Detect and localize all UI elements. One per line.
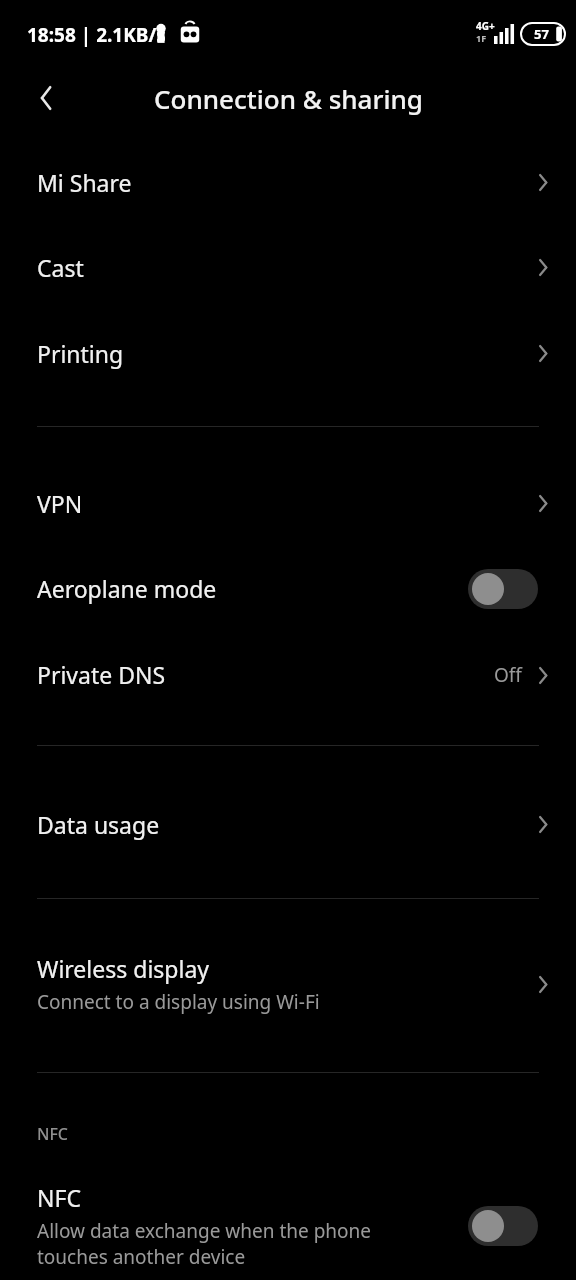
button[interactable]: Back bbox=[20, 71, 74, 125]
staticText: 57 bbox=[534, 25, 549, 43]
staticText: NFC bbox=[37, 1123, 69, 1145]
button[interactable]: Wireless display bbox=[0, 930, 576, 1038]
staticText: VPN bbox=[37, 488, 83, 519]
staticText: 1F bbox=[476, 32, 487, 44]
staticText: Wireless display bbox=[37, 953, 210, 984]
button[interactable]: Printing bbox=[0, 311, 576, 396]
button[interactable]: Cast bbox=[0, 225, 576, 310]
button[interactable]: Data usage bbox=[0, 782, 576, 867]
staticText: Private DNS bbox=[37, 659, 166, 690]
button[interactable]: NFC bbox=[0, 1172, 576, 1280]
staticText: Off bbox=[494, 662, 522, 688]
staticText: Mi Share bbox=[37, 167, 132, 198]
staticText: NFC bbox=[37, 1182, 81, 1213]
staticText: 4G+ bbox=[476, 19, 495, 33]
staticText: Cast bbox=[37, 252, 84, 283]
button[interactable]: VPN bbox=[0, 461, 576, 546]
staticText: 18:58 | 2.1KB/s bbox=[27, 22, 166, 48]
staticText: Connection & sharing bbox=[154, 81, 423, 116]
button[interactable]: Mi Share bbox=[0, 140, 576, 225]
staticText: Connect to a display using Wi-Fi bbox=[37, 989, 320, 1015]
button[interactable]: Private DNS bbox=[0, 632, 576, 717]
staticText: Data usage bbox=[37, 809, 160, 840]
staticText: Allow data exchange when the phone bbox=[37, 1218, 372, 1244]
button[interactable]: Aeroplane mode bbox=[0, 546, 576, 631]
staticText: Aeroplane mode bbox=[37, 573, 217, 604]
staticText: Printing bbox=[37, 338, 124, 369]
staticText: touches another device bbox=[37, 1244, 246, 1270]
